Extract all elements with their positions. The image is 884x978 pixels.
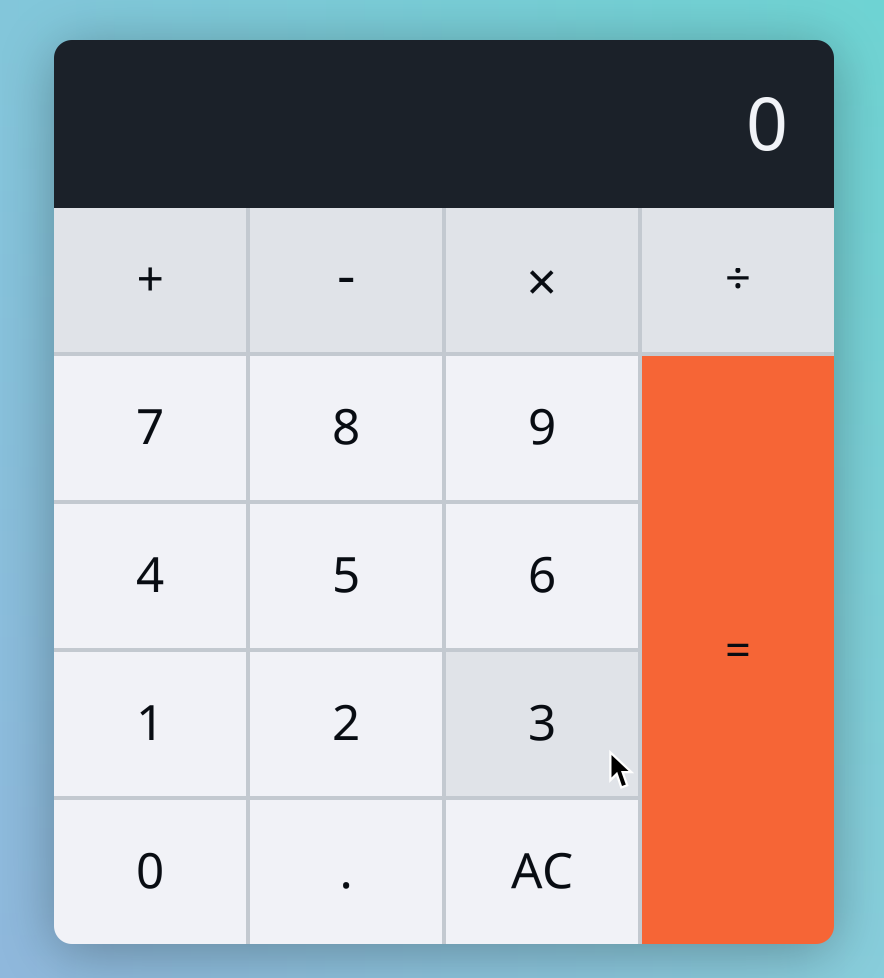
staticText: 4: [136, 540, 164, 606]
button[interactable]: 8: [250, 356, 442, 500]
button[interactable]: Subtract: [250, 208, 442, 352]
staticText: AC: [511, 836, 573, 902]
button[interactable]: Add: [54, 208, 246, 352]
staticText: 8: [332, 392, 360, 458]
staticText: 9: [528, 392, 556, 458]
button[interactable]: 6: [446, 504, 638, 648]
button[interactable]: 3: [446, 652, 638, 796]
staticText: ×: [526, 245, 557, 315]
staticText: 5: [332, 540, 360, 606]
staticText: 6: [528, 540, 556, 606]
button[interactable]: Decimal point: [250, 800, 442, 944]
staticText: .: [339, 836, 352, 902]
staticText: 0: [746, 73, 788, 171]
button[interactable]: Multiply: [446, 208, 638, 352]
staticText: 0: [136, 836, 164, 902]
button[interactable]: Equals: [642, 356, 834, 944]
staticText: -: [337, 235, 355, 311]
staticText: 2: [332, 688, 360, 754]
staticText: 7: [136, 392, 164, 458]
staticText: 1: [136, 688, 164, 754]
staticText: ÷: [725, 247, 751, 307]
button[interactable]: Divide: [642, 208, 834, 352]
button[interactable]: 5: [250, 504, 442, 648]
button[interactable]: All clear: [446, 800, 638, 944]
staticText: =: [725, 618, 751, 679]
button[interactable]: 0: [54, 800, 246, 944]
button[interactable]: 7: [54, 356, 246, 500]
button[interactable]: 4: [54, 504, 246, 648]
button[interactable]: 9: [446, 356, 638, 500]
staticText: 3: [528, 688, 556, 754]
staticText: +: [136, 245, 163, 309]
button[interactable]: 2: [250, 652, 442, 796]
button[interactable]: 1: [54, 652, 246, 796]
